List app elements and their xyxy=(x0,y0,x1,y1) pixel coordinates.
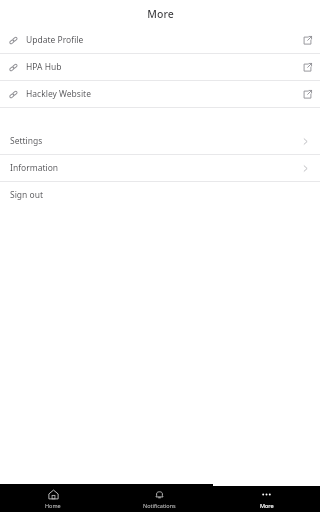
staticText: Hackley Website xyxy=(26,88,91,100)
staticText: Settings xyxy=(10,135,43,147)
staticText: Update Profile xyxy=(26,34,84,46)
button[interactable]: Information xyxy=(0,155,320,181)
staticText: HPA Hub xyxy=(26,61,62,73)
staticText: More xyxy=(147,7,174,21)
staticText: Home xyxy=(45,502,61,509)
button[interactable]: Hackley Website xyxy=(0,81,320,107)
button[interactable]: Update Profile xyxy=(0,27,320,53)
button[interactable]: Home xyxy=(0,486,106,512)
button[interactable]: HPA Hub xyxy=(0,54,320,80)
staticText: Notifications xyxy=(143,502,176,509)
button[interactable]: Settings xyxy=(0,128,320,154)
staticText: Sign out xyxy=(10,189,44,201)
staticText: More xyxy=(260,502,274,509)
button[interactable]: More xyxy=(213,486,320,512)
button[interactable]: Notifications xyxy=(106,486,213,512)
staticText: Information xyxy=(10,162,59,174)
button[interactable]: Sign out xyxy=(0,182,320,208)
